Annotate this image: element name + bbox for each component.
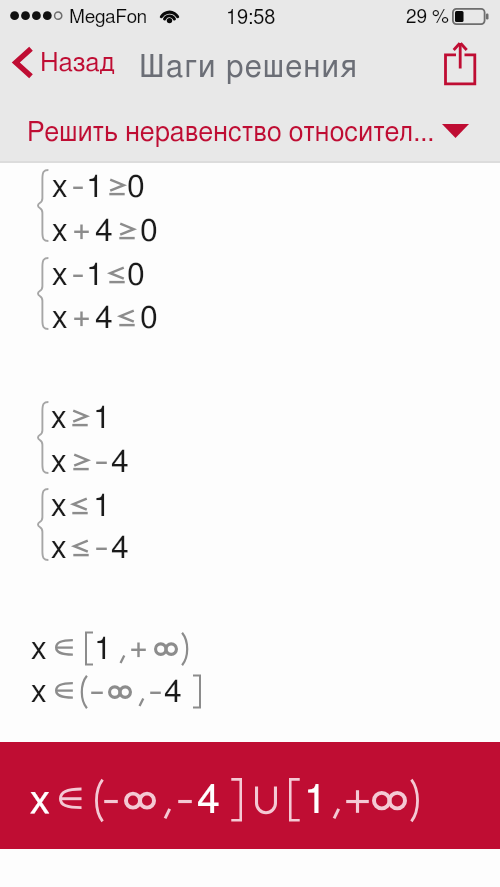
staticText: Решить неравенство относител... xyxy=(27,119,435,146)
staticText: 1 xyxy=(86,171,104,203)
staticText: 4 xyxy=(95,215,113,247)
staticText: MegaFon xyxy=(69,8,147,27)
staticText: 0 xyxy=(127,171,145,203)
staticText: x xyxy=(52,302,68,334)
staticText: 1 xyxy=(93,402,111,434)
button[interactable]: Expand xyxy=(442,124,469,138)
staticText: Шаги решения xyxy=(139,52,359,83)
staticText: 4 xyxy=(164,676,182,708)
staticText: 0 xyxy=(127,259,145,291)
staticText: 1 xyxy=(86,259,104,291)
staticText: 1 xyxy=(94,633,112,665)
staticText: 4 xyxy=(197,780,220,821)
staticText: x xyxy=(30,780,50,821)
staticText: 4 xyxy=(111,532,129,564)
staticText: x xyxy=(31,633,47,665)
staticText: x xyxy=(51,446,67,478)
button[interactable]: Share xyxy=(438,37,482,93)
staticText: x xyxy=(51,490,67,522)
staticText: x xyxy=(52,215,68,247)
button[interactable]: Решить неравенство относител... xyxy=(0,101,500,161)
staticText: x xyxy=(51,532,67,564)
button[interactable]: Назад xyxy=(9,42,119,83)
staticText: x xyxy=(51,402,67,434)
staticText: 4 xyxy=(111,446,129,478)
staticText: 0 xyxy=(140,215,158,247)
staticText: 1 xyxy=(93,490,111,522)
staticText: Назад xyxy=(40,50,115,76)
staticText: x xyxy=(52,259,68,291)
staticText: 0 xyxy=(140,302,158,334)
staticText: 19:58 xyxy=(226,8,276,28)
staticText: 1 xyxy=(304,780,327,821)
staticText: x xyxy=(52,171,68,203)
staticText: 29 % xyxy=(406,8,449,27)
staticText: 4 xyxy=(95,302,113,334)
staticText: x xyxy=(31,676,47,708)
